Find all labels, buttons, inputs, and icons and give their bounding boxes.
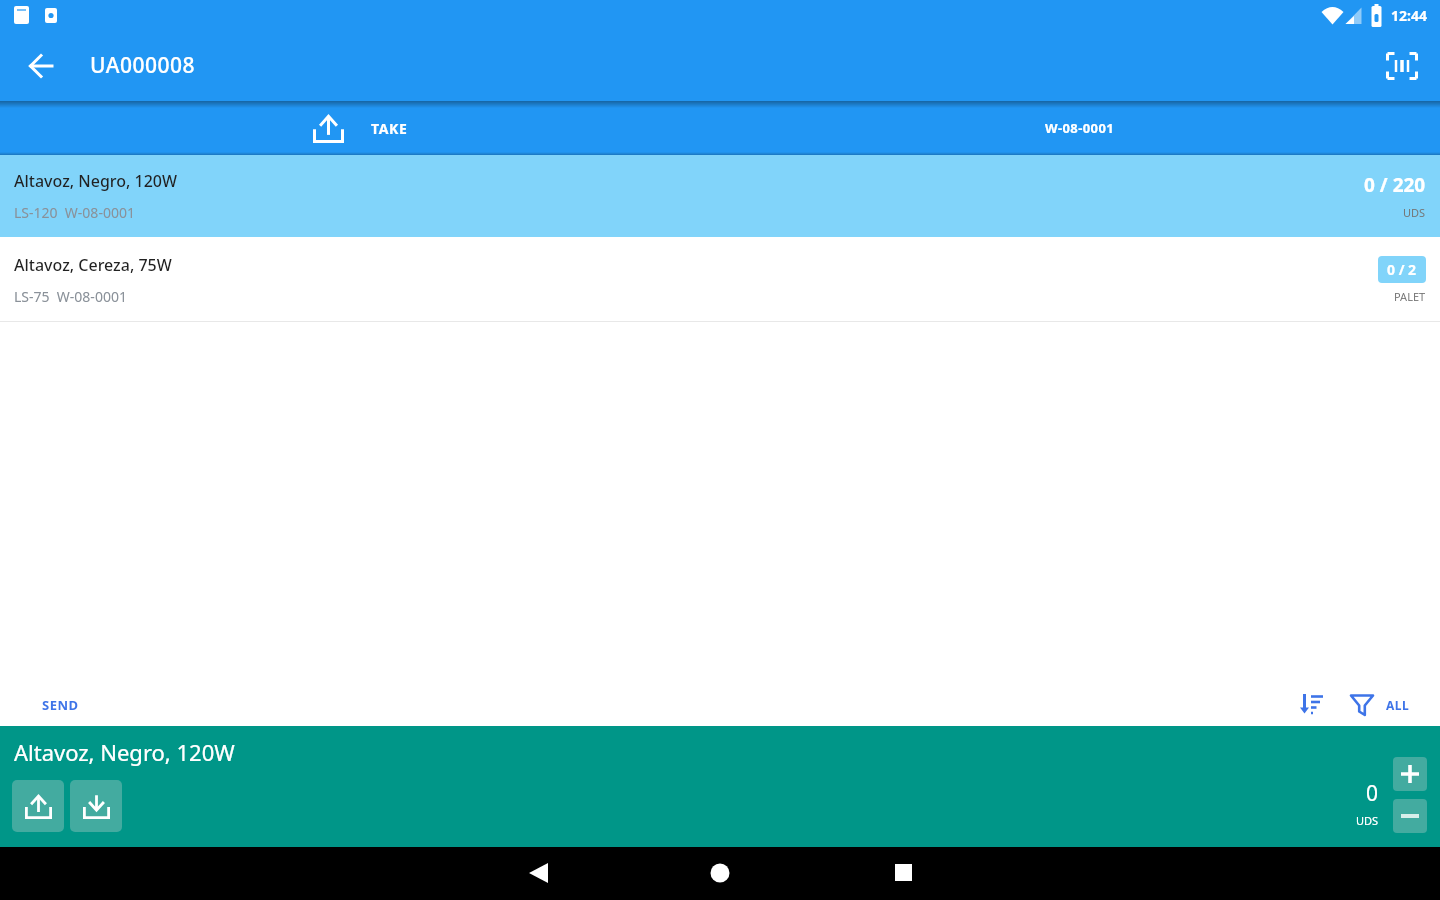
button[interactable]: Altavoz, Negro, 120W (0, 155, 1440, 237)
button[interactable] (1296, 690, 1326, 719)
button[interactable]: Altavoz, Cereza, 75W (0, 237, 1440, 322)
staticText: Altavoz, Negro, 120W (14, 737, 235, 767)
button[interactable]: ALL (1345, 688, 1412, 722)
staticText: UDS (1356, 813, 1379, 828)
staticText: TAKE (371, 119, 408, 138)
button[interactable] (12, 780, 64, 832)
button[interactable] (1393, 757, 1427, 791)
button[interactable]: W-08-0001 (720, 101, 1440, 155)
button[interactable]: SEND (30, 688, 91, 722)
staticText: SEND (42, 696, 79, 714)
button[interactable] (480, 847, 960, 900)
staticText: 12:44 (1391, 6, 1427, 25)
staticText: W-08-0001 (1045, 119, 1115, 137)
staticText: PALET (1394, 289, 1426, 304)
staticText: LS-120 W-08-0001 (14, 203, 135, 222)
staticText: ALL (1386, 697, 1410, 713)
staticText: UA000008 (90, 51, 196, 80)
button[interactable] (22, 47, 60, 85)
button[interactable]: TAKE (0, 101, 720, 155)
button[interactable] (70, 780, 122, 832)
staticText: 0 / 2 (1387, 260, 1417, 279)
staticText: 0 / 220 (1364, 172, 1426, 198)
button[interactable] (1393, 799, 1427, 833)
staticText: UDS (1403, 205, 1426, 220)
staticText: 0 (1366, 779, 1379, 808)
button[interactable] (1380, 44, 1424, 88)
staticText: Altavoz, Negro, 120W (14, 170, 178, 192)
staticText: LS-75 W-08-0001 (14, 287, 127, 306)
staticText: Altavoz, Cereza, 75W (14, 254, 172, 276)
